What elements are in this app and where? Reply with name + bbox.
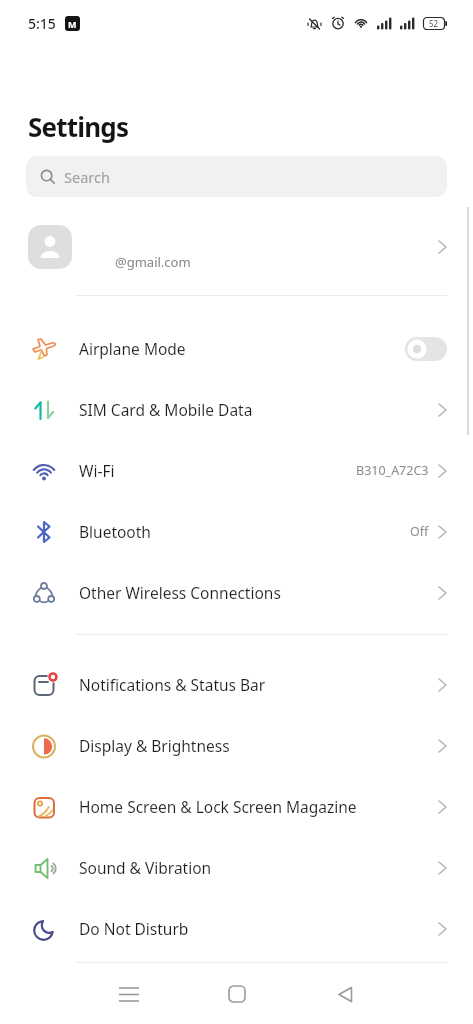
button[interactable] [309,964,381,1024]
staticText: M [68,18,77,30]
button[interactable]: Airplane Mode [0,318,473,379]
staticText: Wi-Fi [79,460,356,481]
button[interactable]: Do Not Disturb [0,898,473,959]
staticText: B310_A72C3 [356,462,429,479]
staticText: 5:15 [28,14,56,33]
button[interactable] [201,964,273,1024]
staticText: @gmail.com [115,253,191,271]
staticText: Bluetooth [79,521,410,542]
staticText: Notifications & Status Bar [79,674,438,695]
button[interactable]: Display & Brightness [0,715,473,776]
staticText: Do Not Disturb [79,918,438,939]
staticText: Airplane Mode [79,338,405,359]
staticText: 52 [429,18,439,29]
staticText: Display & Brightness [79,735,438,756]
button[interactable]: Other Wireless Connections [0,562,473,623]
button[interactable]: @gmail.com [0,225,473,269]
button[interactable]: SIM Card & Mobile Data [0,379,473,440]
staticText: Settings [28,109,129,144]
button[interactable]: Notifications & Status Bar [0,654,473,715]
button[interactable]: Sound & Vibration [0,837,473,898]
staticText: Sound & Vibration [79,857,438,878]
button[interactable]: Bluetooth [0,501,473,562]
button[interactable]: Home Screen & Lock Screen Magazine [0,776,473,837]
staticText: Other Wireless Connections [79,582,438,603]
staticText: Home Screen & Lock Screen Magazine [79,796,438,817]
staticText: Search [64,167,110,187]
staticText: Off [410,523,429,540]
button[interactable]: Search [26,156,447,197]
button[interactable] [93,964,165,1024]
button[interactable]: Wi-Fi [0,440,473,501]
button[interactable] [405,337,447,361]
staticText: SIM Card & Mobile Data [79,399,438,420]
